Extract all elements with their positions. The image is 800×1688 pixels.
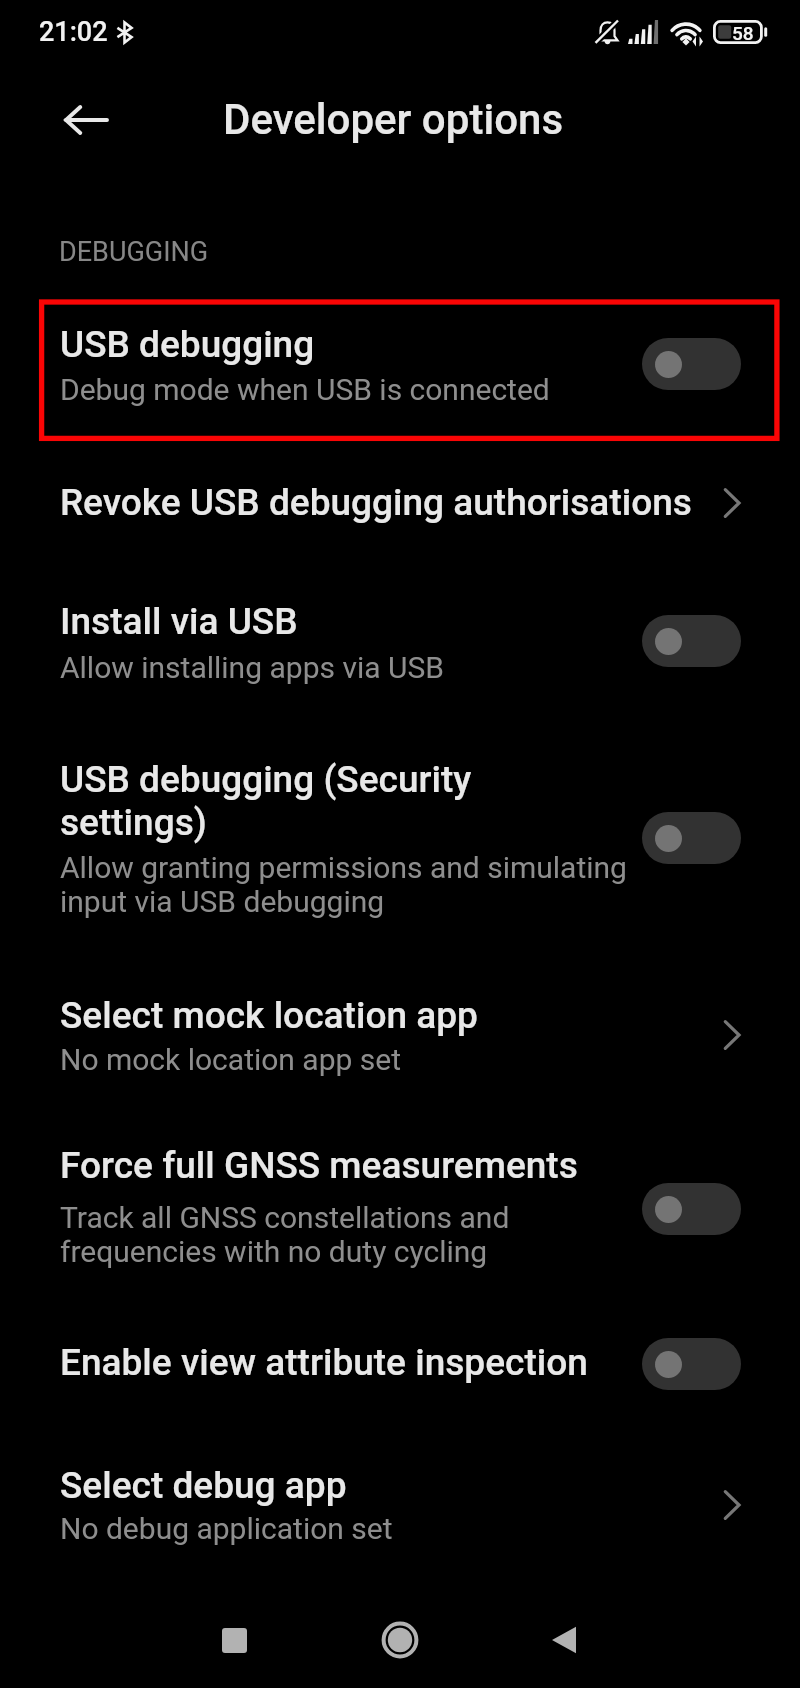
button[interactable]: Toggle off <box>642 1183 741 1235</box>
staticText: 58 <box>732 22 754 44</box>
staticText: Select mock location app <box>60 994 478 1037</box>
staticText: Revoke USB debugging authorisations <box>60 481 692 524</box>
button[interactable]: Back <box>524 1600 604 1680</box>
staticText: Debug mode when USB is connected <box>60 373 550 407</box>
button[interactable]: USB debugging <box>0 300 800 440</box>
staticText: Select debug app <box>60 1464 347 1507</box>
staticText: Force full GNSS measurements <box>60 1144 578 1187</box>
button[interactable]: Open <box>706 1009 758 1061</box>
button[interactable]: Revoke USB debugging authorisations <box>0 455 800 543</box>
button[interactable]: Select mock location app <box>0 972 800 1098</box>
button[interactable]: Recents <box>194 1600 274 1680</box>
staticText: Enable view attribute inspection <box>60 1341 588 1384</box>
staticText: Install via USB <box>60 600 298 643</box>
button[interactable]: Install via USB <box>0 578 800 704</box>
button[interactable]: Home <box>360 1600 440 1680</box>
staticText: Track all GNSS constellations and freque… <box>60 1201 660 1269</box>
button[interactable]: Open <box>706 1479 758 1531</box>
staticText: No mock location app set <box>60 1043 402 1077</box>
button[interactable]: Force full GNSS measurements <box>0 1122 800 1278</box>
staticText: DEBUGGING <box>59 236 209 268</box>
button[interactable]: USB debugging (Security settings) <box>0 736 800 926</box>
staticText: USB debugging (Security settings) <box>60 758 540 844</box>
staticText: USB debugging <box>60 323 315 366</box>
button[interactable]: Toggle off <box>642 615 741 667</box>
staticText: No debug application set <box>60 1512 393 1546</box>
staticText: Allow installing apps via USB <box>60 651 444 685</box>
staticText: 21:02 <box>39 16 108 48</box>
button[interactable]: Back <box>54 94 118 146</box>
button[interactable]: Open <box>706 477 758 529</box>
button[interactable]: Toggle off <box>642 1338 741 1390</box>
staticText: Developer options <box>223 95 564 144</box>
staticText: Allow granting permissions and simulatin… <box>60 851 660 919</box>
button[interactable]: Toggle off <box>642 338 741 390</box>
button[interactable]: Select debug app <box>0 1442 800 1568</box>
button[interactable]: Enable view attribute inspection <box>0 1319 800 1419</box>
button[interactable]: Toggle off <box>642 812 741 864</box>
